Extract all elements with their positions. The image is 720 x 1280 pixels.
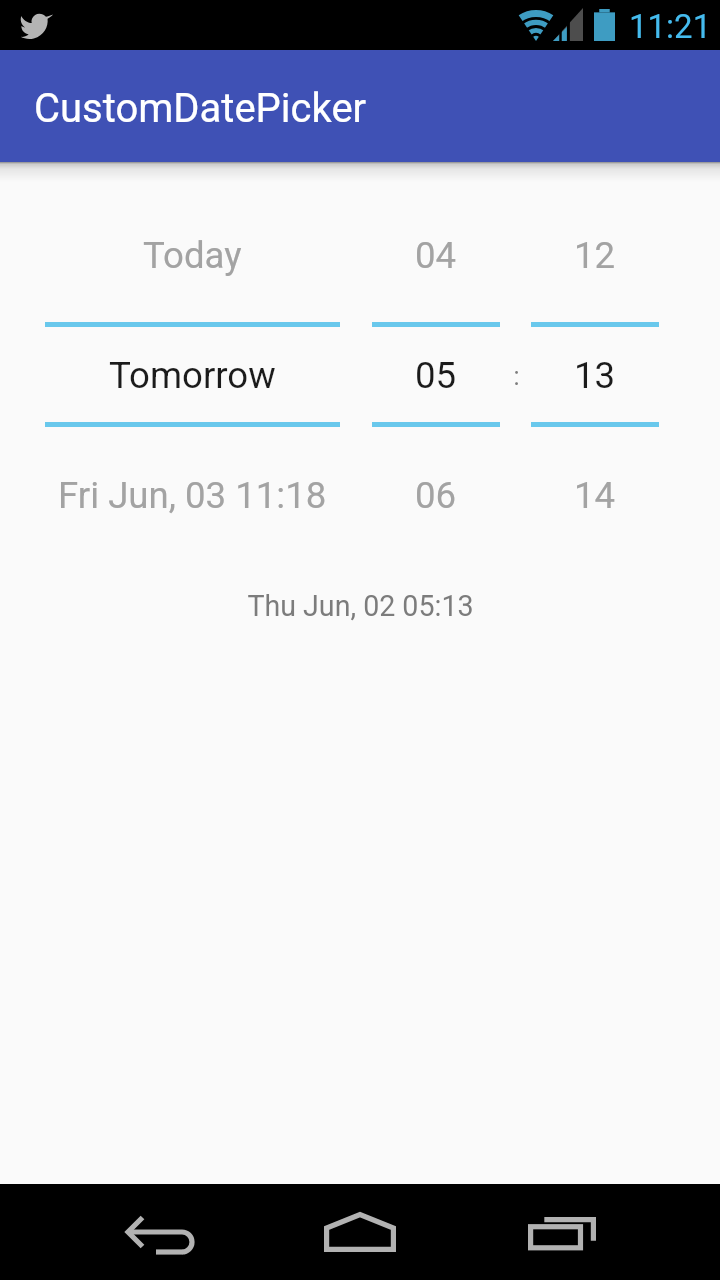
button[interactable]: 13 (525, 325, 665, 425)
staticText: 14 (574, 474, 616, 517)
staticText: 12 (574, 234, 616, 277)
button[interactable]: 12 (525, 205, 665, 305)
button[interactable]: Tomorrow (27, 325, 357, 425)
button[interactable]: Fri Jun, 03 11:18 (27, 445, 357, 545)
button[interactable]: 04 (366, 205, 506, 305)
button[interactable]: Back (104, 1201, 216, 1277)
button[interactable]: 14 (525, 445, 665, 545)
button[interactable]: Today (27, 205, 357, 305)
button[interactable]: CustomDatePicker (0, 50, 720, 162)
staticText: Today (143, 234, 242, 277)
staticText: CustomDatePicker (34, 85, 367, 132)
staticText: Fri Jun, 03 11:18 (58, 474, 327, 517)
staticText: Tomorrow (109, 354, 276, 397)
button[interactable]: Home (304, 1194, 416, 1270)
button[interactable]: Recent apps (506, 1197, 618, 1273)
staticText: 04 (415, 234, 457, 277)
staticText: Thu Jun, 02 05:13 (247, 589, 474, 623)
staticText: 05 (415, 354, 457, 397)
staticText: : (513, 362, 520, 391)
staticText: 11:21 (629, 7, 712, 46)
button[interactable]: 06 (366, 445, 506, 545)
button[interactable]: 05 (366, 325, 506, 425)
staticText: 06 (415, 474, 457, 517)
staticText: 13 (574, 354, 616, 397)
